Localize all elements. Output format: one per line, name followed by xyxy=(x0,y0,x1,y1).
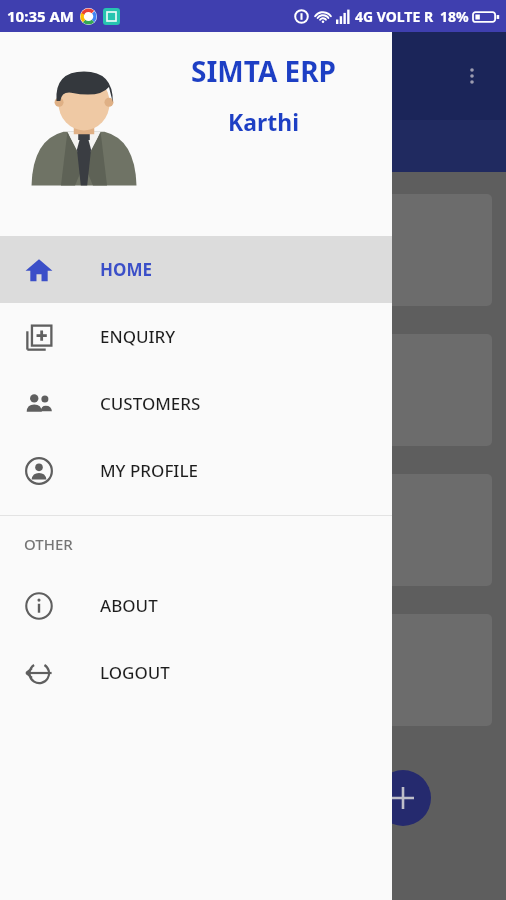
staticText: SIMTA ERP xyxy=(191,52,337,90)
button[interactable]: MY PROFILE xyxy=(0,437,392,504)
button[interactable]: Add xyxy=(375,770,431,826)
button[interactable] xyxy=(14,614,492,726)
button[interactable]: CUSTOMERS xyxy=(0,370,392,437)
button[interactable]: More options xyxy=(454,58,490,94)
staticText: 18% xyxy=(440,7,469,26)
staticText: MY PROFILE xyxy=(100,459,198,482)
button[interactable]: HOME xyxy=(0,236,392,303)
button[interactable] xyxy=(14,194,492,306)
button[interactable]: ABOUT xyxy=(0,572,392,639)
button[interactable]: LOGOUT xyxy=(0,639,392,706)
staticText: Karthi xyxy=(228,106,300,137)
staticText: ENQUIRY xyxy=(100,325,176,348)
button[interactable] xyxy=(14,334,492,446)
staticText: LOGOUT xyxy=(100,661,170,684)
staticText: ABOUT xyxy=(100,594,158,617)
staticText: 4G VOLTE R xyxy=(355,7,434,26)
staticText: CUSTOMERS xyxy=(100,392,201,415)
staticText: 10:35 AM xyxy=(7,6,74,26)
button[interactable] xyxy=(14,474,492,586)
button[interactable]: ENQUIRY xyxy=(0,303,392,370)
staticText: HOME xyxy=(100,258,153,281)
staticText: OTHER xyxy=(24,534,73,554)
